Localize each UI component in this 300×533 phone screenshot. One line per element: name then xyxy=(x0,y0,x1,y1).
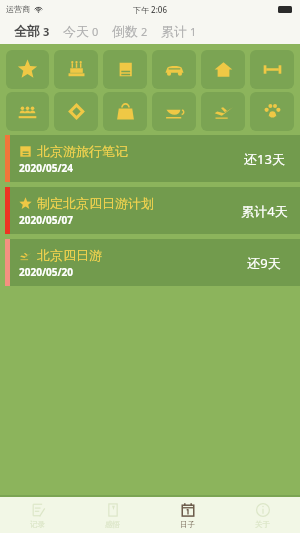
staticText: 今天 xyxy=(63,23,89,39)
button[interactable]: CAR xyxy=(152,50,196,89)
staticText: 日子 xyxy=(180,520,195,529)
button[interactable]: 感悟 xyxy=(75,497,150,533)
button[interactable]: 关于 xyxy=(225,497,300,533)
button[interactable]: 日子 xyxy=(150,497,225,533)
button[interactable]: DUMBBELL xyxy=(250,50,294,89)
staticText: 还13天 xyxy=(244,150,285,168)
staticText: 还9天 xyxy=(247,254,281,272)
staticText: 3 xyxy=(43,24,50,39)
button[interactable]: 今天 xyxy=(63,20,99,42)
button[interactable]: 累计 xyxy=(161,20,197,42)
staticText: 北京四日游 xyxy=(37,247,102,263)
staticText: 累计 xyxy=(161,23,187,39)
staticText: 0 xyxy=(92,24,99,39)
staticText: 运营商 xyxy=(6,4,30,14)
button[interactable]: 北京游旅行笔记 xyxy=(0,135,300,182)
button[interactable]: PAW xyxy=(250,92,294,131)
button[interactable]: 全部 xyxy=(14,20,50,42)
staticText: 累计4天 xyxy=(241,202,288,220)
button[interactable]: 记录 xyxy=(0,497,75,533)
button[interactable]: DIAMOND xyxy=(54,92,98,131)
staticText: 关于 xyxy=(255,520,270,529)
button[interactable]: HOME xyxy=(201,50,245,89)
staticText: 2 xyxy=(141,24,148,39)
staticText: 感悟 xyxy=(105,520,120,529)
button[interactable]: 倒数 xyxy=(112,20,148,42)
staticText: 记录 xyxy=(30,520,45,529)
button[interactable]: STAR xyxy=(6,50,49,89)
staticText: 北京游旅行笔记 xyxy=(37,143,128,159)
staticText: 倒数 xyxy=(112,23,138,39)
staticText: 2020/05/20 xyxy=(19,265,74,279)
staticText: 1 xyxy=(190,24,197,39)
staticText: 下午 2:06 xyxy=(133,4,167,15)
staticText: 2020/05/07 xyxy=(19,213,74,227)
staticText: 全部 xyxy=(14,23,40,39)
staticText: 制定北京四日游计划 xyxy=(37,195,154,211)
button[interactable]: 制定北京四日游计划 xyxy=(0,187,300,234)
button[interactable]: BAG xyxy=(103,92,147,131)
button[interactable]: PLANE xyxy=(201,92,245,131)
button[interactable]: BOOK xyxy=(103,50,147,89)
button[interactable]: CUP xyxy=(152,92,196,131)
button[interactable]: 北京四日游 xyxy=(0,239,300,286)
staticText: 2020/05/24 xyxy=(19,161,74,175)
button[interactable]: CAKE xyxy=(54,50,98,89)
button[interactable]: PEOPLE xyxy=(6,92,49,131)
